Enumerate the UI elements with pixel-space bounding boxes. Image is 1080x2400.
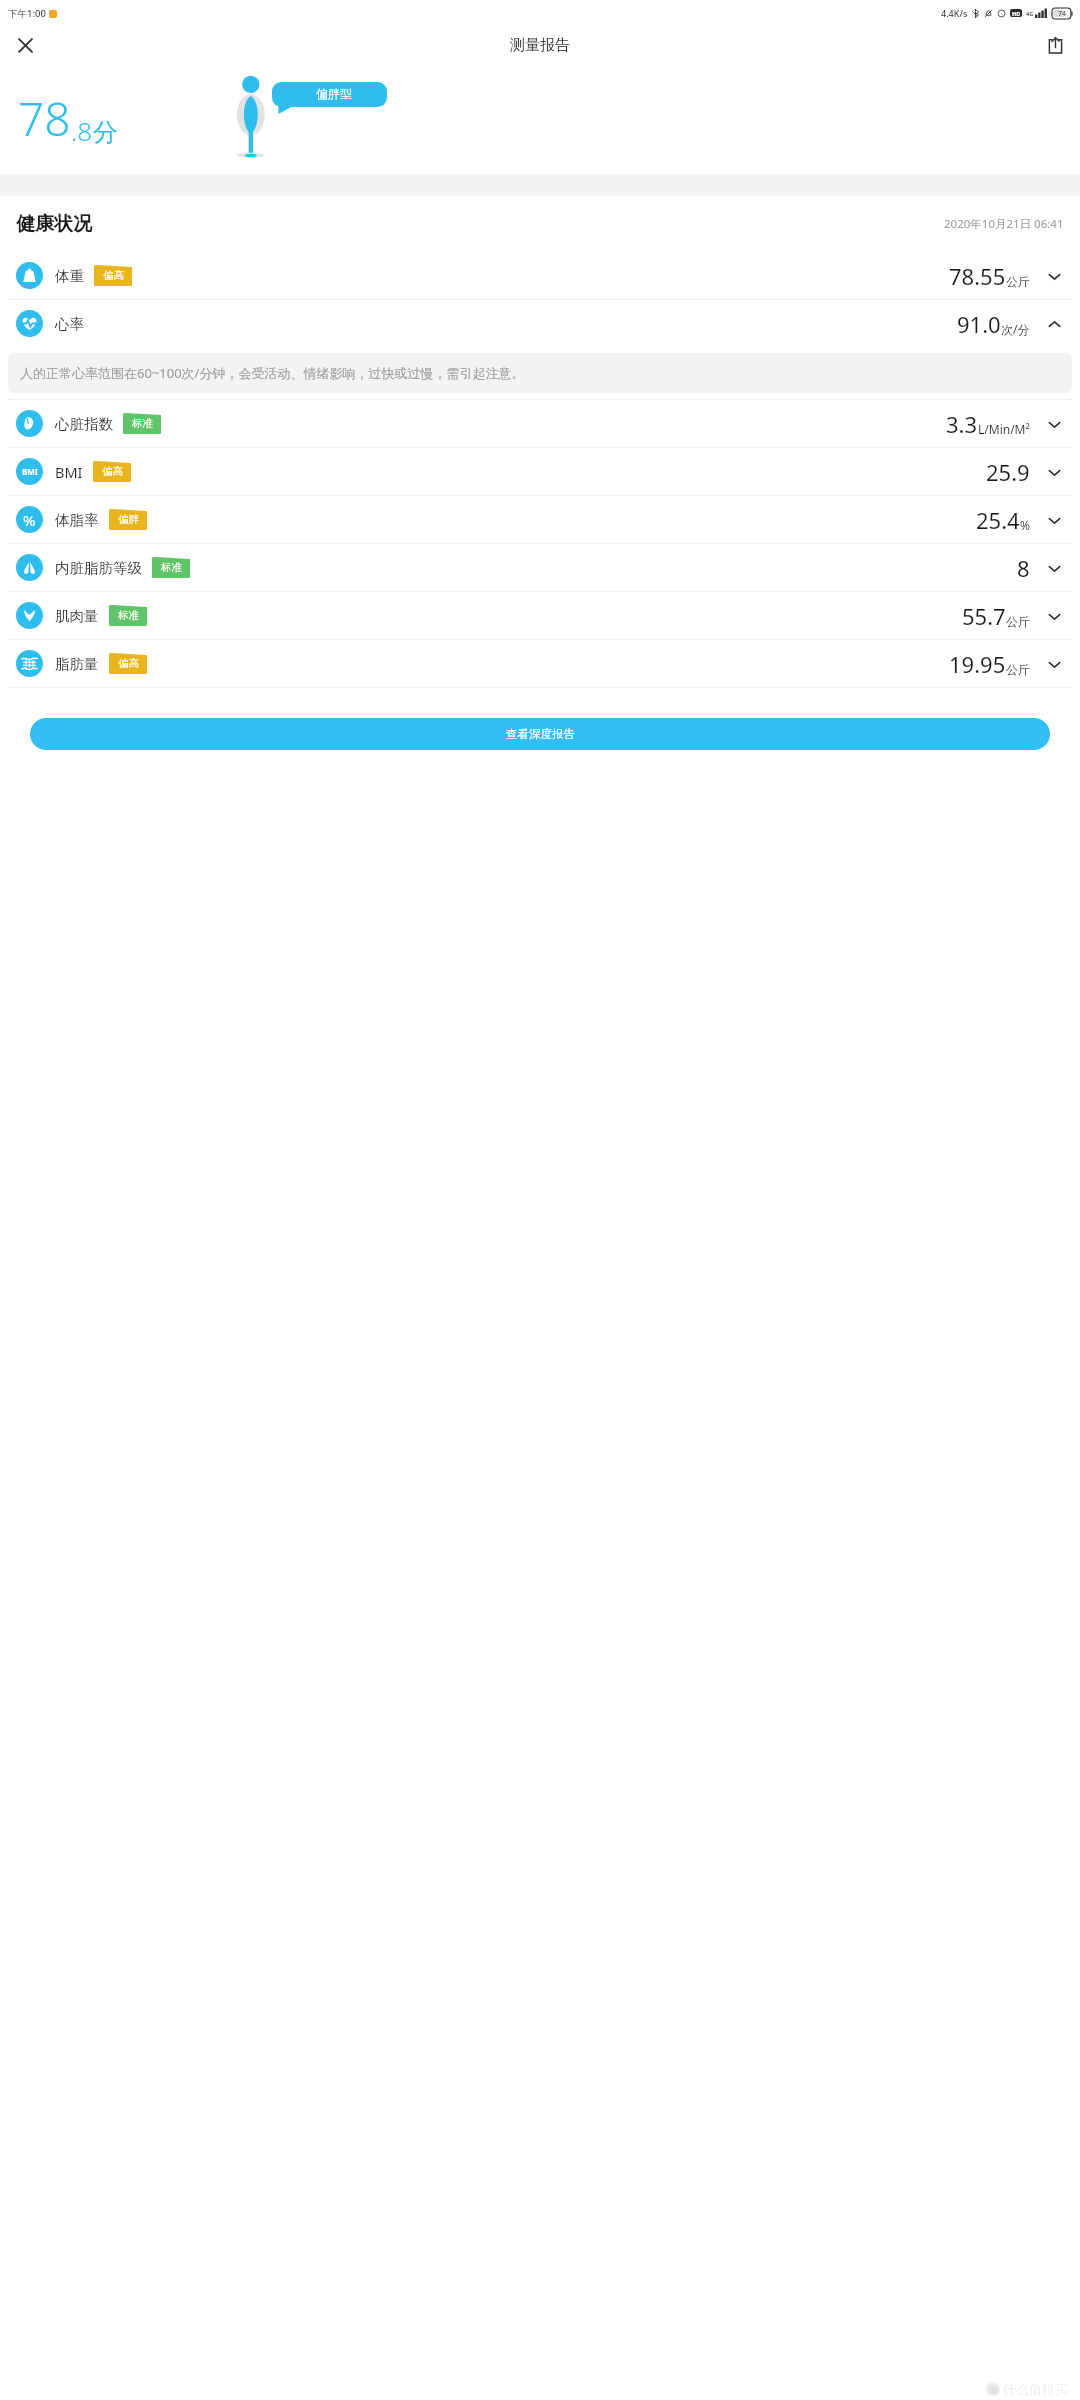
staticText: 查看深度报告 bbox=[506, 727, 575, 741]
staticText: 19.95 bbox=[949, 649, 1006, 679]
staticText: 4G bbox=[1026, 10, 1034, 17]
staticText: 体重 bbox=[55, 267, 84, 285]
staticText: 74 bbox=[1058, 9, 1067, 19]
staticText: 标准 bbox=[118, 609, 139, 622]
staticText: 55.7 bbox=[962, 601, 1006, 631]
staticText: 偏高 bbox=[118, 657, 139, 670]
staticText: 78.55 bbox=[949, 261, 1006, 291]
staticText: 25.9 bbox=[986, 457, 1030, 487]
staticText: 偏胖 bbox=[118, 513, 139, 526]
staticText: 健康状况 bbox=[16, 212, 92, 236]
staticText: 值 bbox=[989, 2384, 998, 2395]
staticText: 偏高 bbox=[103, 269, 124, 282]
staticText: 什么值得买 bbox=[1003, 2381, 1068, 2397]
staticText: 标准 bbox=[132, 417, 153, 430]
staticText: HD bbox=[1012, 10, 1021, 17]
staticText: L/Min/M² bbox=[978, 421, 1030, 437]
staticText: 78 bbox=[18, 87, 71, 150]
staticText: BMI bbox=[22, 466, 38, 477]
button[interactable]: Share bbox=[1040, 30, 1070, 60]
staticText: % bbox=[1020, 517, 1030, 533]
staticText: 3.3 bbox=[946, 409, 978, 439]
staticText: 25.4 bbox=[976, 505, 1020, 535]
staticText: % bbox=[23, 510, 36, 530]
button[interactable]: 内脏脂肪等级 bbox=[0, 544, 1080, 591]
staticText: 公斤 bbox=[1006, 614, 1030, 629]
button[interactable]: 脂肪量 bbox=[0, 640, 1080, 687]
staticText: 91.0 bbox=[957, 309, 1001, 339]
staticText: 体脂率 bbox=[55, 511, 99, 529]
staticText: 脂肪量 bbox=[55, 655, 99, 673]
staticText: 公斤 bbox=[1006, 662, 1030, 677]
button[interactable]: 肌肉量 bbox=[0, 592, 1080, 639]
staticText: .8 bbox=[71, 113, 93, 148]
button[interactable]: 查看深度报告 bbox=[30, 718, 1050, 750]
button[interactable]: 心脏指数 bbox=[0, 400, 1080, 447]
staticText: 心脏指数 bbox=[55, 415, 113, 433]
staticText: 测量报告 bbox=[510, 36, 570, 55]
staticText: 8 bbox=[1017, 553, 1030, 583]
staticText: 公斤 bbox=[1006, 274, 1030, 289]
staticText: 标准 bbox=[161, 561, 182, 574]
staticText: 心率 bbox=[55, 315, 84, 333]
button[interactable]: Close bbox=[10, 30, 40, 60]
staticText: BMI bbox=[55, 462, 83, 482]
button[interactable]: BMI bbox=[0, 448, 1080, 495]
button[interactable]: 心率 bbox=[0, 300, 1080, 347]
staticText: 肌肉量 bbox=[55, 607, 99, 625]
staticText: 4.4K/s bbox=[941, 7, 968, 19]
button[interactable]: % bbox=[0, 496, 1080, 543]
staticText: 偏高 bbox=[102, 465, 123, 478]
staticText: 下午1:00 bbox=[8, 7, 46, 20]
staticText: 人的正常心率范围在60~100次/分钟，会受活动、情绪影响，过快或过慢，需引起注… bbox=[20, 364, 525, 382]
staticText: 内脏脂肪等级 bbox=[55, 559, 142, 577]
staticText: 次/分 bbox=[1001, 321, 1030, 337]
staticText: 分 bbox=[93, 117, 118, 148]
button[interactable]: 体重 bbox=[0, 252, 1080, 299]
staticText: 2020年10月21日 06:41 bbox=[944, 216, 1064, 232]
staticText: 偏胖型 bbox=[316, 86, 352, 101]
